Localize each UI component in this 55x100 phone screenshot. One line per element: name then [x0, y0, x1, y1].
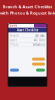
button[interactable]: [32, 63, 45, 66]
staticText: bank: [9, 24, 17, 27]
staticText: AC Unit: [34, 38, 45, 42]
staticText: Photo: [10, 43, 19, 46]
button[interactable]: [32, 58, 45, 61]
staticText: Attached: [33, 43, 45, 46]
staticText: with Photos & Request link: [0, 10, 55, 16]
button[interactable]: [10, 69, 19, 72]
staticText: Asset Checklist: [17, 28, 38, 32]
staticText: Salt Lake: [35, 34, 45, 37]
staticText: Branch & Asset Checklist: [2, 4, 52, 9]
staticText: Asset: [10, 38, 17, 42]
staticText: Branch: [10, 34, 19, 37]
button[interactable]: [36, 69, 45, 72]
